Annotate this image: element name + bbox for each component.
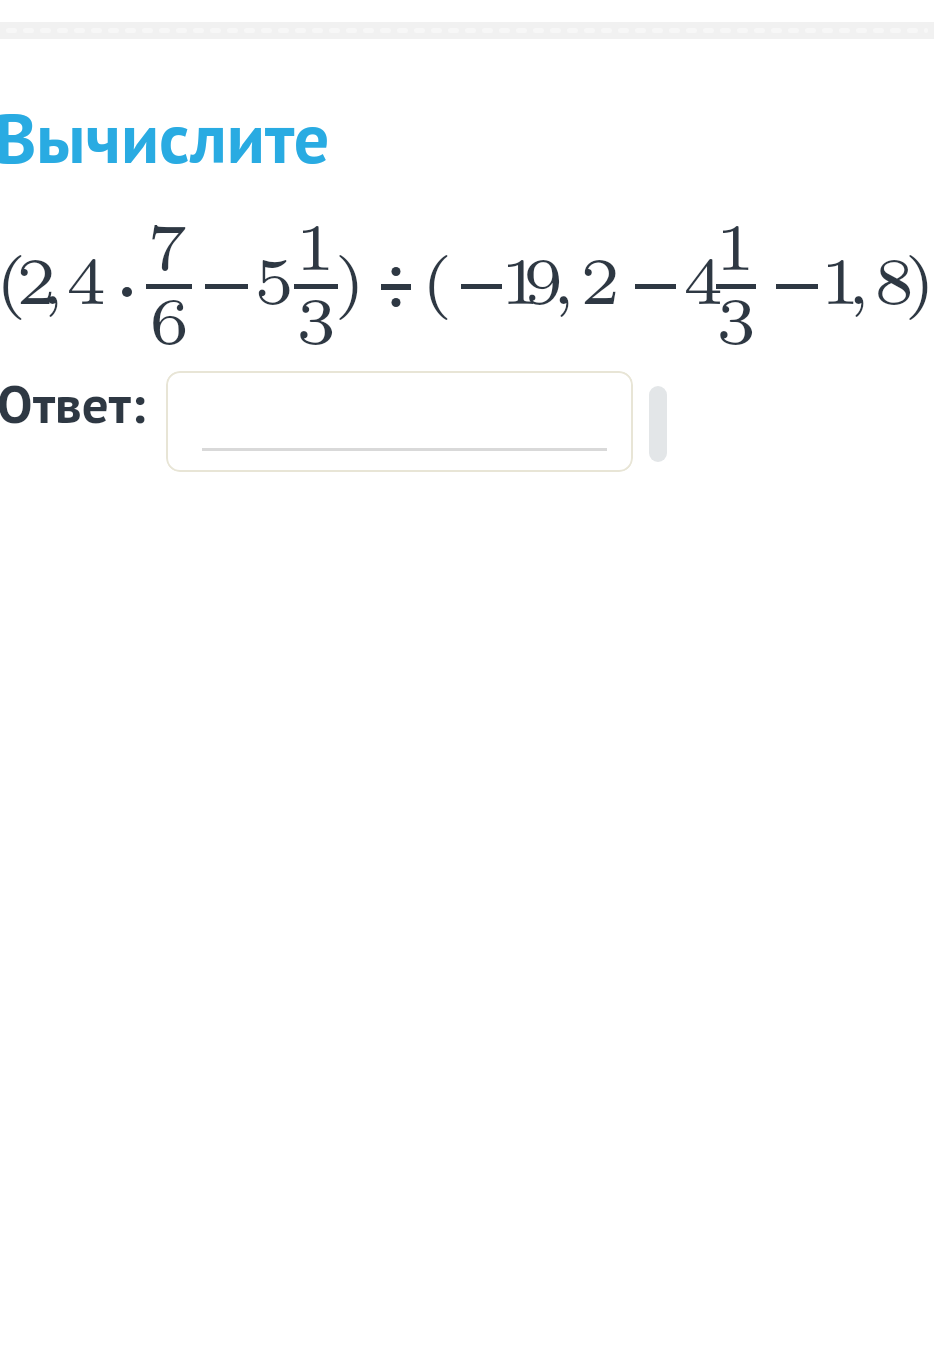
staticText: 6 bbox=[149, 270, 190, 364]
button[interactable] bbox=[166, 371, 633, 472]
staticText: 1 bbox=[820, 230, 861, 324]
staticText: ( bbox=[421, 230, 453, 324]
staticText: 2 bbox=[16, 230, 57, 324]
staticText: ) bbox=[904, 230, 934, 324]
staticText: ( bbox=[0, 230, 27, 324]
staticText: 3 bbox=[296, 270, 337, 364]
staticText: Ответ: bbox=[0, 369, 146, 438]
staticText: Вычислите bbox=[0, 92, 330, 183]
staticText: , bbox=[847, 230, 871, 324]
staticText: 1 bbox=[295, 196, 336, 290]
staticText: 8 bbox=[874, 230, 915, 324]
staticText: 5 bbox=[254, 230, 295, 324]
staticText: 3 bbox=[716, 270, 757, 364]
staticText: ) bbox=[334, 230, 366, 324]
staticText: 4 bbox=[66, 230, 107, 324]
staticText: 1 bbox=[715, 196, 756, 290]
staticText: , bbox=[552, 230, 576, 324]
staticText: 4 bbox=[683, 230, 724, 324]
staticText: 7 bbox=[147, 196, 188, 290]
staticText: , bbox=[41, 230, 65, 324]
staticText: 2 bbox=[580, 230, 621, 324]
staticText: 1 bbox=[500, 230, 541, 324]
staticText: 9 bbox=[523, 230, 564, 324]
